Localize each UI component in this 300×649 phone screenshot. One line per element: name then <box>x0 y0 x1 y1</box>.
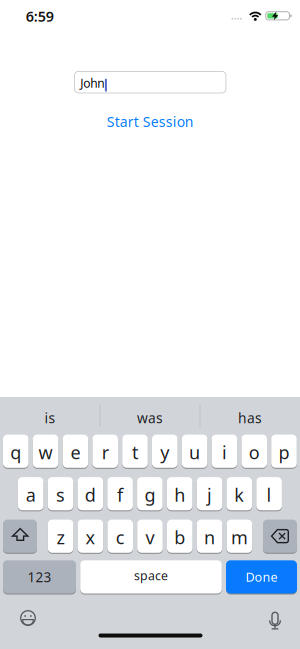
button[interactable]: o <box>241 435 267 468</box>
button[interactable]: Name text field <box>74 71 226 93</box>
staticText: a <box>26 482 36 507</box>
staticText: u <box>189 440 200 464</box>
button[interactable]: was <box>101 399 199 436</box>
button[interactable]: a <box>18 477 43 510</box>
staticText: k <box>234 482 244 507</box>
button[interactable]: w <box>33 435 58 468</box>
button[interactable]: is <box>1 399 99 436</box>
staticText: John <box>80 75 104 91</box>
staticText: j <box>207 482 212 507</box>
button[interactable]: b <box>167 520 193 553</box>
staticText: t <box>132 440 138 464</box>
staticText: e <box>70 440 80 464</box>
staticText: Start Session <box>107 112 194 131</box>
button[interactable]: 123 <box>3 560 76 593</box>
staticText: x <box>85 525 95 549</box>
button[interactable]: m <box>227 520 252 553</box>
button[interactable]: r <box>92 435 118 468</box>
button[interactable]: l <box>256 477 282 510</box>
staticText: s <box>56 482 65 507</box>
staticText: h <box>174 482 185 507</box>
staticText: w <box>39 440 53 464</box>
staticText: d <box>85 482 96 507</box>
button[interactable]: y <box>152 435 178 468</box>
staticText: f <box>117 482 123 507</box>
button[interactable]: Start Session <box>107 112 194 131</box>
button[interactable]: v <box>137 520 163 553</box>
staticText: z <box>57 525 65 549</box>
button[interactable]: z <box>48 520 73 553</box>
staticText: g <box>144 482 155 507</box>
staticText: n <box>204 525 215 549</box>
button[interactable]: p <box>271 435 297 468</box>
staticText: p <box>278 440 289 464</box>
staticText: 6:59 <box>26 6 54 26</box>
button[interactable]: Emoji <box>15 605 41 631</box>
staticText: space <box>134 567 168 584</box>
button[interactable]: t <box>122 435 148 468</box>
button[interactable]: Shift <box>3 520 37 553</box>
button[interactable]: has <box>201 399 299 436</box>
staticText: v <box>145 525 154 549</box>
button[interactable]: Delete <box>263 520 297 553</box>
button[interactable]: n <box>197 520 222 553</box>
staticText: q <box>10 440 21 464</box>
button[interactable]: Dictate <box>264 607 286 633</box>
staticText: Done <box>245 568 277 585</box>
staticText: c <box>116 525 125 549</box>
staticText: i <box>222 440 227 464</box>
staticText: was <box>137 409 163 427</box>
staticText: o <box>249 440 260 464</box>
button[interactable]: e <box>63 435 88 468</box>
button[interactable]: k <box>226 477 252 510</box>
button[interactable]: space <box>80 560 222 593</box>
button[interactable]: Done <box>226 560 297 593</box>
staticText: b <box>174 525 185 549</box>
button[interactable]: i <box>212 435 237 468</box>
button[interactable]: x <box>78 520 103 553</box>
button[interactable]: u <box>182 435 207 468</box>
staticText: y <box>160 440 169 464</box>
button[interactable]: c <box>107 520 133 553</box>
button[interactable]: d <box>77 477 103 510</box>
staticText: m <box>231 525 248 549</box>
button[interactable]: j <box>197 477 222 510</box>
button[interactable]: q <box>3 435 29 468</box>
staticText: l <box>267 482 272 507</box>
staticText: r <box>102 440 109 464</box>
button[interactable]: s <box>48 477 73 510</box>
staticText: has <box>238 409 262 427</box>
button[interactable]: g <box>137 477 163 510</box>
staticText: is <box>44 409 55 427</box>
staticText: 123 <box>27 568 51 586</box>
button[interactable]: h <box>167 477 192 510</box>
button[interactable]: f <box>107 477 133 510</box>
